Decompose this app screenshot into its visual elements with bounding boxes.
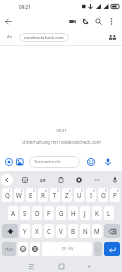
- staticText: D: [35, 209, 40, 217]
- button[interactable]: Enter: [104, 242, 120, 256]
- button[interactable]: C: [44, 224, 54, 238]
- button[interactable]: Call: [79, 15, 92, 28]
- button[interactable]: Gallery: [13, 155, 27, 169]
- button[interactable]: Backspace: [104, 224, 120, 238]
- staticText: Z: [65, 191, 69, 199]
- button[interactable]: Back: [2, 15, 15, 28]
- button[interactable]: Search: [92, 15, 105, 28]
- button[interactable]: Change language: [30, 242, 40, 256]
- staticText: T: [53, 191, 57, 199]
- staticText: W: [16, 191, 22, 199]
- staticText: P: [113, 191, 117, 199]
- staticText: K: [95, 209, 99, 217]
- staticText: DE · EN: [62, 247, 73, 251]
- button[interactable]: D: [32, 206, 42, 220]
- staticText: O: [101, 191, 106, 199]
- button[interactable]: Video call: [66, 15, 79, 28]
- button[interactable]: Camera: [2, 155, 16, 169]
- button[interactable]: J: [80, 206, 90, 220]
- button[interactable]: Q: [2, 188, 12, 202]
- staticText: N: [83, 227, 88, 235]
- staticText: L: [107, 209, 111, 217]
- button[interactable]: S: [20, 206, 30, 220]
- staticText: H: [71, 209, 76, 217]
- button[interactable]: Period: [94, 242, 102, 256]
- button[interactable]: Voice message: [101, 155, 115, 169]
- staticText: R: [41, 191, 45, 199]
- button[interactable]: M: [92, 224, 102, 238]
- button[interactable]: Emoji: [18, 242, 28, 256]
- button[interactable]: I: [86, 188, 96, 202]
- button[interactable]: Add people: [106, 31, 118, 43]
- staticText: 5: [57, 189, 59, 193]
- button[interactable]: E: [26, 188, 36, 202]
- button[interactable]: notebookcheck.com: [19, 33, 69, 42]
- button[interactable]: T: [50, 188, 60, 202]
- button[interactable]: K: [92, 206, 102, 220]
- button[interactable]: U: [74, 188, 84, 202]
- button[interactable]: P: [110, 188, 120, 202]
- staticText: 3: [33, 189, 35, 193]
- button[interactable]: DE · EN: [42, 242, 92, 256]
- staticText: Unterhaltung mit notebookcheck.com: [22, 139, 101, 145]
- staticText: .: [97, 246, 99, 252]
- staticText: 09:21: [56, 128, 67, 133]
- button[interactable]: More: [91, 174, 103, 186]
- staticText: 2: [21, 189, 23, 193]
- staticText: Q: [5, 191, 10, 199]
- staticText: 4: [45, 189, 47, 193]
- staticText: V: [59, 227, 63, 235]
- staticText: 09:21: [19, 4, 31, 10]
- staticText: An: [7, 34, 13, 40]
- staticText: GIF: [40, 178, 46, 183]
- button[interactable]: R: [38, 188, 48, 202]
- staticText: 8: [93, 189, 95, 193]
- button[interactable]: W: [14, 188, 24, 202]
- button[interactable]: Textnachricht: [29, 156, 80, 168]
- button[interactable]: G: [56, 206, 66, 220]
- staticText: ?123: [5, 247, 13, 252]
- button[interactable]: V: [56, 224, 66, 238]
- button[interactable]: GIF: [37, 174, 49, 186]
- staticText: I: [90, 191, 93, 199]
- staticText: G: [59, 209, 64, 217]
- staticText: U: [77, 191, 82, 199]
- staticText: 6: [69, 189, 71, 193]
- button[interactable]: H: [68, 206, 78, 220]
- staticText: B: [71, 227, 76, 235]
- staticText: C: [47, 227, 51, 235]
- staticText: J: [84, 209, 86, 217]
- staticText: 7: [81, 189, 83, 193]
- button[interactable]: F: [44, 206, 54, 220]
- staticText: 1: [9, 189, 11, 193]
- staticText: E: [29, 191, 33, 199]
- staticText: F: [47, 209, 51, 217]
- button[interactable]: Clipboard: [55, 174, 67, 186]
- staticText: M: [94, 227, 100, 235]
- button[interactable]: O: [98, 188, 108, 202]
- button[interactable]: Recent apps: [26, 261, 37, 272]
- button[interactable]: ?123: [2, 242, 16, 256]
- button[interactable]: Stickers: [19, 174, 31, 186]
- button[interactable]: B: [68, 224, 78, 238]
- button[interactable]: Home: [56, 261, 67, 272]
- button[interactable]: L: [104, 206, 114, 220]
- staticText: X: [35, 227, 39, 235]
- button[interactable]: X: [32, 224, 42, 238]
- button[interactable]: Emoji: [84, 155, 98, 169]
- button[interactable]: Collapse keyboard: [1, 174, 13, 186]
- button[interactable]: Voice input: [109, 174, 121, 186]
- button[interactable]: More options: [105, 15, 118, 28]
- button[interactable]: N: [80, 224, 90, 238]
- staticText: 0: [117, 189, 119, 193]
- button[interactable]: Y: [20, 224, 30, 238]
- staticText: 9: [105, 189, 107, 193]
- button[interactable]: Shift: [2, 224, 18, 238]
- staticText: A: [11, 209, 15, 217]
- staticText: notebookcheck.com: [24, 35, 64, 41]
- button[interactable]: Settings: [73, 174, 85, 186]
- button[interactable]: A: [8, 206, 18, 220]
- staticText: S: [23, 209, 27, 217]
- button[interactable]: Z: [62, 188, 72, 202]
- button[interactable]: Back: [83, 261, 94, 272]
